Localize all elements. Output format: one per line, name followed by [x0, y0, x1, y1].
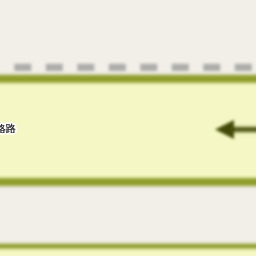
button[interactable]	[0, 0, 256, 256]
